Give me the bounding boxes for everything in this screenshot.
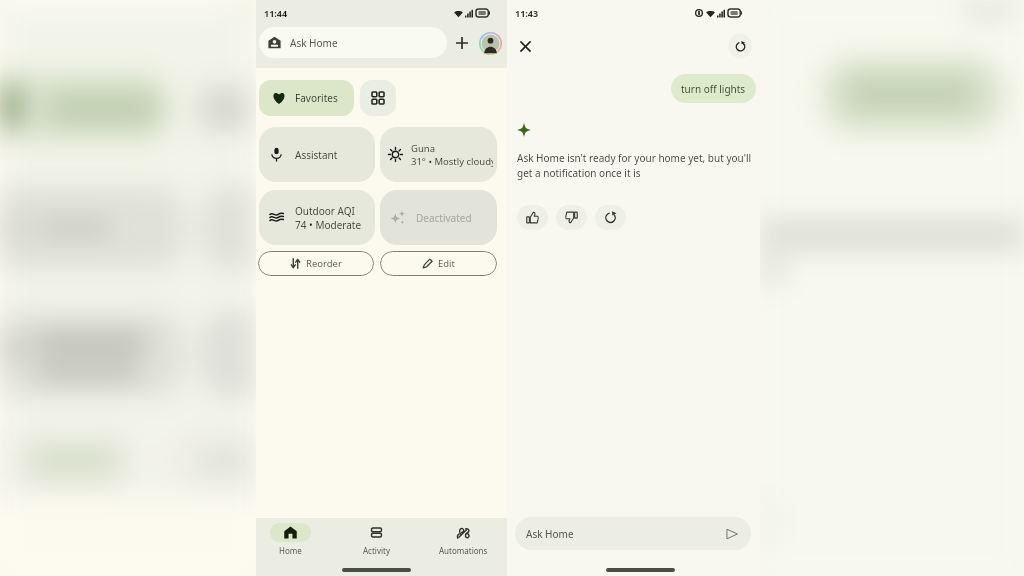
button[interactable]: Send: [724, 526, 740, 542]
button[interactable]: Regenerate: [595, 205, 626, 230]
button[interactable]: Thumbs down: [556, 205, 587, 230]
button[interactable]: Guna: [380, 127, 497, 182]
staticText: Deactivated: [416, 211, 472, 225]
button[interactable]: Edit: [380, 251, 497, 276]
button[interactable]: Deactivated: [380, 190, 497, 245]
staticText: 11:43: [515, 7, 539, 19]
button[interactable]: Reorder: [258, 251, 374, 276]
staticText: turn off lights: [681, 82, 746, 96]
button[interactable]: Close: [516, 37, 534, 55]
staticText: Edit: [438, 257, 456, 270]
staticText: Ask Home: [290, 36, 338, 50]
button[interactable]: Refresh: [728, 34, 752, 58]
button[interactable]: Account: [477, 30, 503, 56]
button[interactable]: Favorites: [259, 80, 354, 116]
button[interactable]: Assistant: [259, 127, 375, 182]
staticText: Reorder: [306, 257, 342, 270]
button[interactable]: Activity: [333, 523, 420, 559]
staticText: Activity: [363, 545, 390, 556]
staticText: 31° • Mostly cloudy: [411, 155, 493, 168]
staticText: Automations: [439, 545, 488, 556]
staticText: Favorites: [295, 91, 338, 105]
button[interactable]: Ask Home: [515, 517, 751, 550]
button[interactable]: Outdoor AQI: [259, 190, 375, 245]
button[interactable]: Grid view: [360, 80, 396, 116]
staticText: 74 • Moderate: [295, 218, 362, 232]
button[interactable]: Add device: [447, 28, 477, 58]
button[interactable]: Ask Home: [259, 27, 447, 58]
staticText: Ask Home isn't ready for your home yet, …: [517, 151, 754, 180]
staticText: Ask Home: [526, 527, 574, 541]
staticText: Guna: [411, 142, 435, 155]
staticText: Assistant: [295, 148, 338, 162]
button[interactable]: Automations: [420, 523, 507, 559]
button[interactable]: Home: [247, 523, 333, 559]
button[interactable]: Thumbs up: [517, 205, 548, 230]
staticText: Outdoor AQI: [295, 204, 355, 218]
button[interactable]: turn off lights: [671, 74, 756, 103]
staticText: Home: [279, 545, 302, 556]
staticText: 11:44: [264, 7, 288, 19]
